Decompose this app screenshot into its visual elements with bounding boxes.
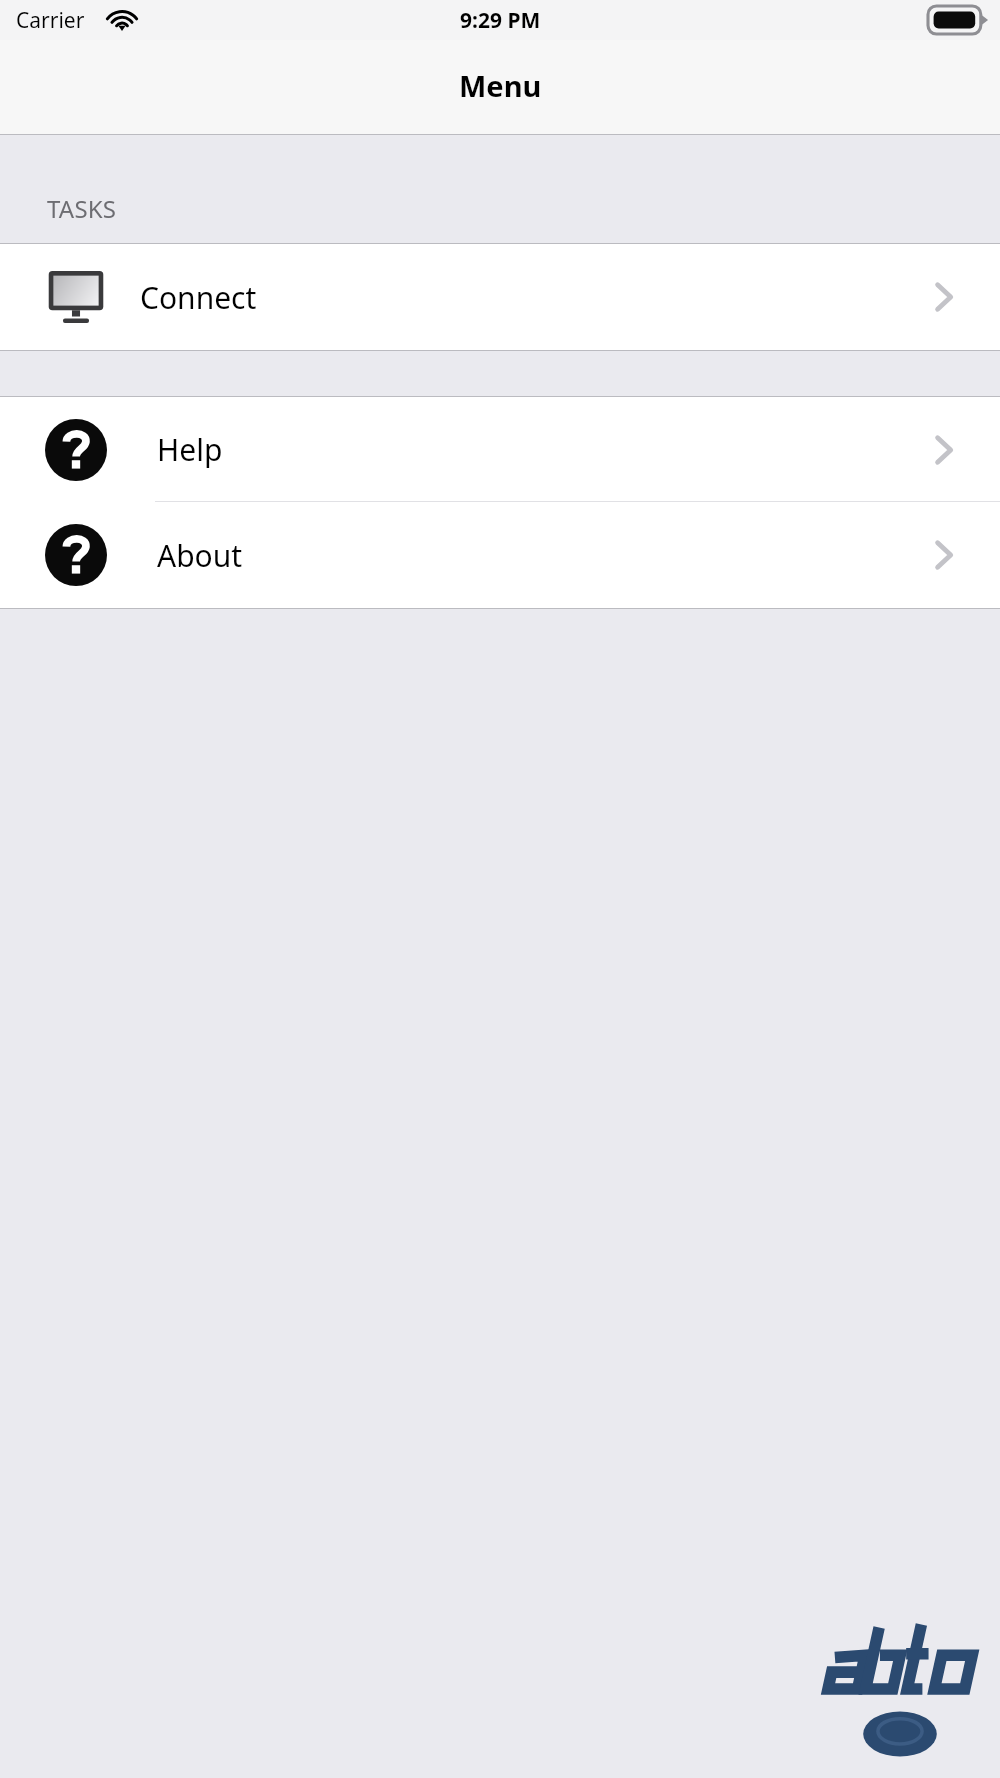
staticText: TASKS: [47, 192, 117, 225]
button[interactable]: Help: [0, 397, 1000, 502]
staticText: Menu: [459, 66, 542, 105]
other: Connect: [936, 283, 952, 311]
button[interactable]: Connect: [0, 244, 1000, 350]
staticText: Help: [157, 429, 223, 470]
staticText: 9:29 PM: [460, 6, 541, 35]
other: About: [936, 541, 952, 569]
staticText: Carrier: [16, 6, 85, 35]
staticText: About: [157, 535, 243, 576]
other: Help: [936, 436, 952, 464]
button[interactable]: About: [0, 502, 1000, 608]
staticText: Connect: [140, 277, 257, 318]
